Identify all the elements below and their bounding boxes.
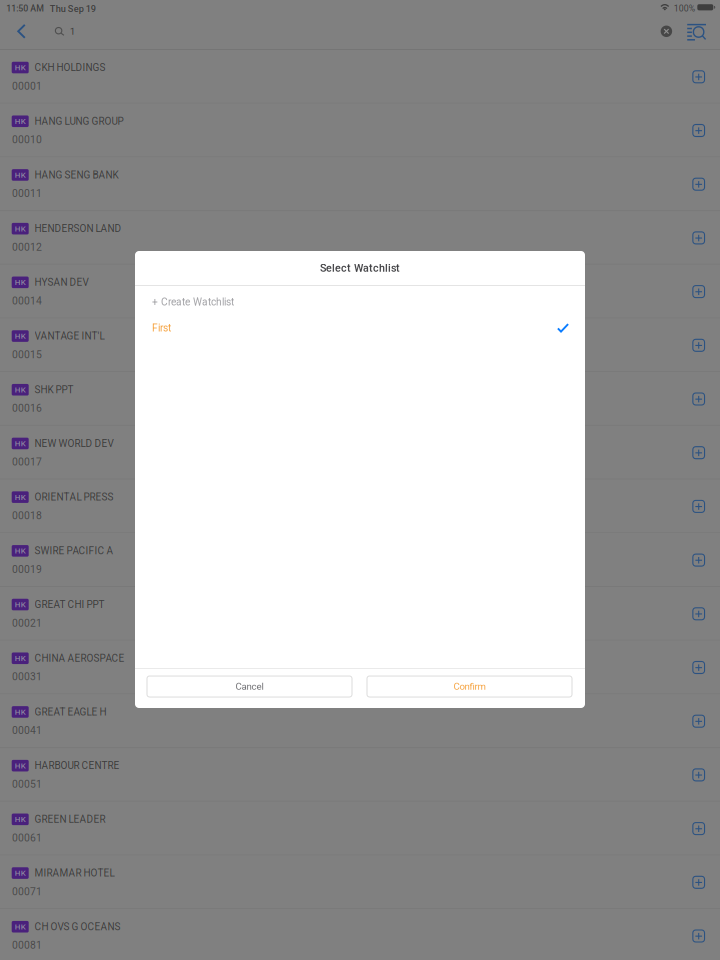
staticText: VANTAGE INT'L	[34, 330, 104, 342]
staticText: HK	[15, 654, 26, 663]
staticText: HK	[15, 331, 26, 341]
staticText: NEW WORLD DEV	[34, 438, 113, 449]
button[interactable]: HK	[0, 50, 720, 104]
staticText: HANG LUNG GROUP	[34, 115, 123, 127]
staticText: 00051	[12, 778, 42, 790]
button[interactable]: HK	[0, 909, 720, 960]
staticText: Cancel	[235, 681, 263, 692]
staticText: SHK PPT	[34, 384, 73, 396]
staticText: HK	[15, 278, 26, 287]
button[interactable]: HK	[0, 426, 720, 480]
button[interactable]: HK	[0, 318, 720, 372]
staticText: GREAT EAGLE H	[34, 706, 106, 718]
staticText: HANG SENG BANK	[34, 169, 118, 181]
staticText: 00061	[12, 832, 42, 844]
staticText: + Create Watchlist	[152, 296, 234, 308]
staticText: 00014	[12, 295, 42, 307]
staticText: CHINA AEROSPACE	[34, 652, 124, 664]
button[interactable]: HK	[0, 480, 720, 533]
button[interactable]: HK	[0, 104, 720, 157]
button[interactable]: HK	[0, 157, 720, 211]
staticText: HK	[15, 224, 26, 233]
staticText: HK	[15, 63, 26, 72]
staticText: HK	[15, 707, 26, 717]
staticText: HARBOUR CENTRE	[34, 760, 119, 771]
staticText: GREEN LEADER	[34, 813, 105, 825]
staticText: HK	[15, 117, 26, 126]
staticText: MIRAMAR HOTEL	[34, 867, 114, 879]
staticText: 00018	[12, 510, 42, 522]
staticText: 00012	[12, 241, 42, 253]
button[interactable]: HK	[0, 211, 720, 265]
button[interactable]: HK	[0, 265, 720, 318]
staticText: ORIENTAL PRESS	[34, 491, 113, 503]
staticText: Confirm	[453, 681, 485, 692]
staticText: 00019	[12, 563, 42, 575]
staticText: HENDERSON LAND	[34, 223, 121, 234]
staticText: 00016	[12, 402, 42, 414]
staticText: HK	[15, 868, 26, 878]
button[interactable]: HK	[0, 802, 720, 855]
staticText: CKH HOLDINGS	[34, 62, 105, 73]
staticText: HK	[15, 546, 26, 556]
staticText: 00011	[12, 187, 42, 200]
staticText: First	[152, 322, 171, 334]
staticText: HK	[15, 385, 26, 394]
staticText: CH OVS G OCEANS	[34, 921, 120, 933]
staticText: 00015	[12, 348, 42, 361]
staticText: 00010	[12, 134, 42, 146]
staticText: 00071	[12, 885, 42, 898]
button[interactable]: HK	[0, 587, 720, 641]
staticText: Select Watchlist	[320, 262, 400, 274]
button[interactable]: HK	[0, 855, 720, 909]
staticText: 00081	[12, 939, 42, 951]
staticText: 1	[70, 25, 76, 37]
staticText: HK	[15, 170, 26, 180]
staticText: 100%	[674, 3, 695, 14]
button[interactable]: HK	[0, 748, 720, 802]
staticText: 11:50 AM	[6, 3, 44, 14]
staticText: Thu Sep 19	[50, 3, 96, 14]
staticText: 00031	[12, 671, 42, 683]
staticText: HK	[15, 439, 26, 448]
button[interactable]: + Create Watchlist	[135, 289, 585, 315]
staticText: SWIRE PACIFIC A	[34, 545, 113, 557]
staticText: HK	[15, 761, 26, 770]
staticText: HK	[15, 922, 26, 931]
button[interactable]: Confirm	[367, 676, 572, 697]
button[interactable]: HK	[0, 533, 720, 587]
staticText: 00041	[12, 724, 42, 737]
staticText: 00001	[12, 80, 42, 92]
staticText: 00021	[12, 617, 42, 629]
button[interactable]: HK	[0, 694, 720, 748]
button[interactable]: Back	[7, 17, 37, 46]
staticText: 00017	[12, 456, 42, 468]
button[interactable]: Cancel	[147, 676, 352, 697]
staticText: GREAT CHI PPT	[34, 599, 104, 610]
button[interactable]: First	[135, 315, 585, 341]
staticText: HYSAN DEV	[34, 276, 88, 288]
button[interactable]: Advanced search	[684, 17, 710, 46]
staticText: HK	[15, 600, 26, 609]
button[interactable]: Clear search	[654, 17, 678, 46]
staticText: HK	[15, 492, 26, 502]
button[interactable]: HK	[0, 372, 720, 426]
staticText: HK	[15, 815, 26, 824]
button[interactable]: HK	[0, 641, 720, 694]
